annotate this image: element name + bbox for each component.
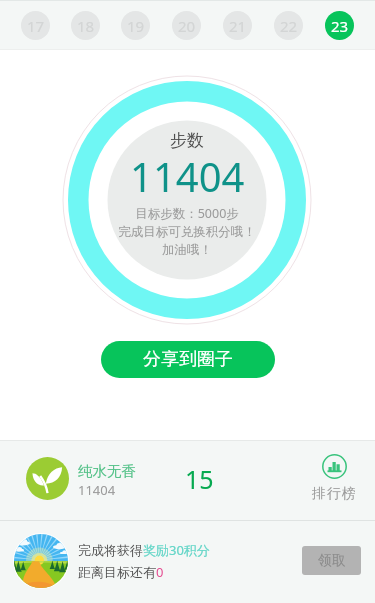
- button[interactable]: 21: [212, 1, 263, 49]
- button[interactable]: 纯水无香: [0, 441, 375, 520]
- button[interactable]: 完成将获得奖励30积分: [0, 521, 375, 603]
- button[interactable]: 分享到圈子: [101, 341, 275, 378]
- staticText: 领取: [318, 552, 346, 570]
- button[interactable]: 领取: [302, 546, 361, 575]
- button[interactable]: 19: [110, 1, 161, 49]
- button[interactable]: 排行榜: [309, 454, 359, 503]
- other: 排行榜: [322, 454, 347, 479]
- button[interactable]: 23: [314, 1, 365, 49]
- button[interactable]: 22: [263, 1, 314, 49]
- staticText: 22: [280, 16, 298, 36]
- staticText: 11404: [130, 149, 245, 195]
- staticText: 步数: [170, 130, 204, 150]
- staticText: 19: [127, 16, 145, 36]
- staticText: 目标步数：5000步 完成目标可兑换积分哦！ 加油哦！: [118, 205, 256, 258]
- staticText: 21: [229, 16, 247, 36]
- staticText: 分享到圈子: [143, 348, 233, 371]
- button[interactable]: 20: [161, 1, 212, 49]
- button[interactable]: 18: [60, 1, 110, 49]
- staticText: 排行榜: [312, 485, 357, 503]
- staticText: 距离目标还有0: [78, 563, 164, 581]
- staticText: 11404: [78, 481, 116, 499]
- staticText: 17: [27, 16, 45, 36]
- staticText: 完成将获得奖励30积分: [78, 541, 210, 559]
- staticText: 18: [77, 16, 95, 36]
- staticText: 20: [178, 16, 196, 36]
- staticText: 15: [185, 462, 214, 496]
- button[interactable]: 17: [10, 1, 60, 49]
- staticText: 23: [331, 16, 349, 36]
- staticText: 纯水无香: [78, 462, 136, 480]
